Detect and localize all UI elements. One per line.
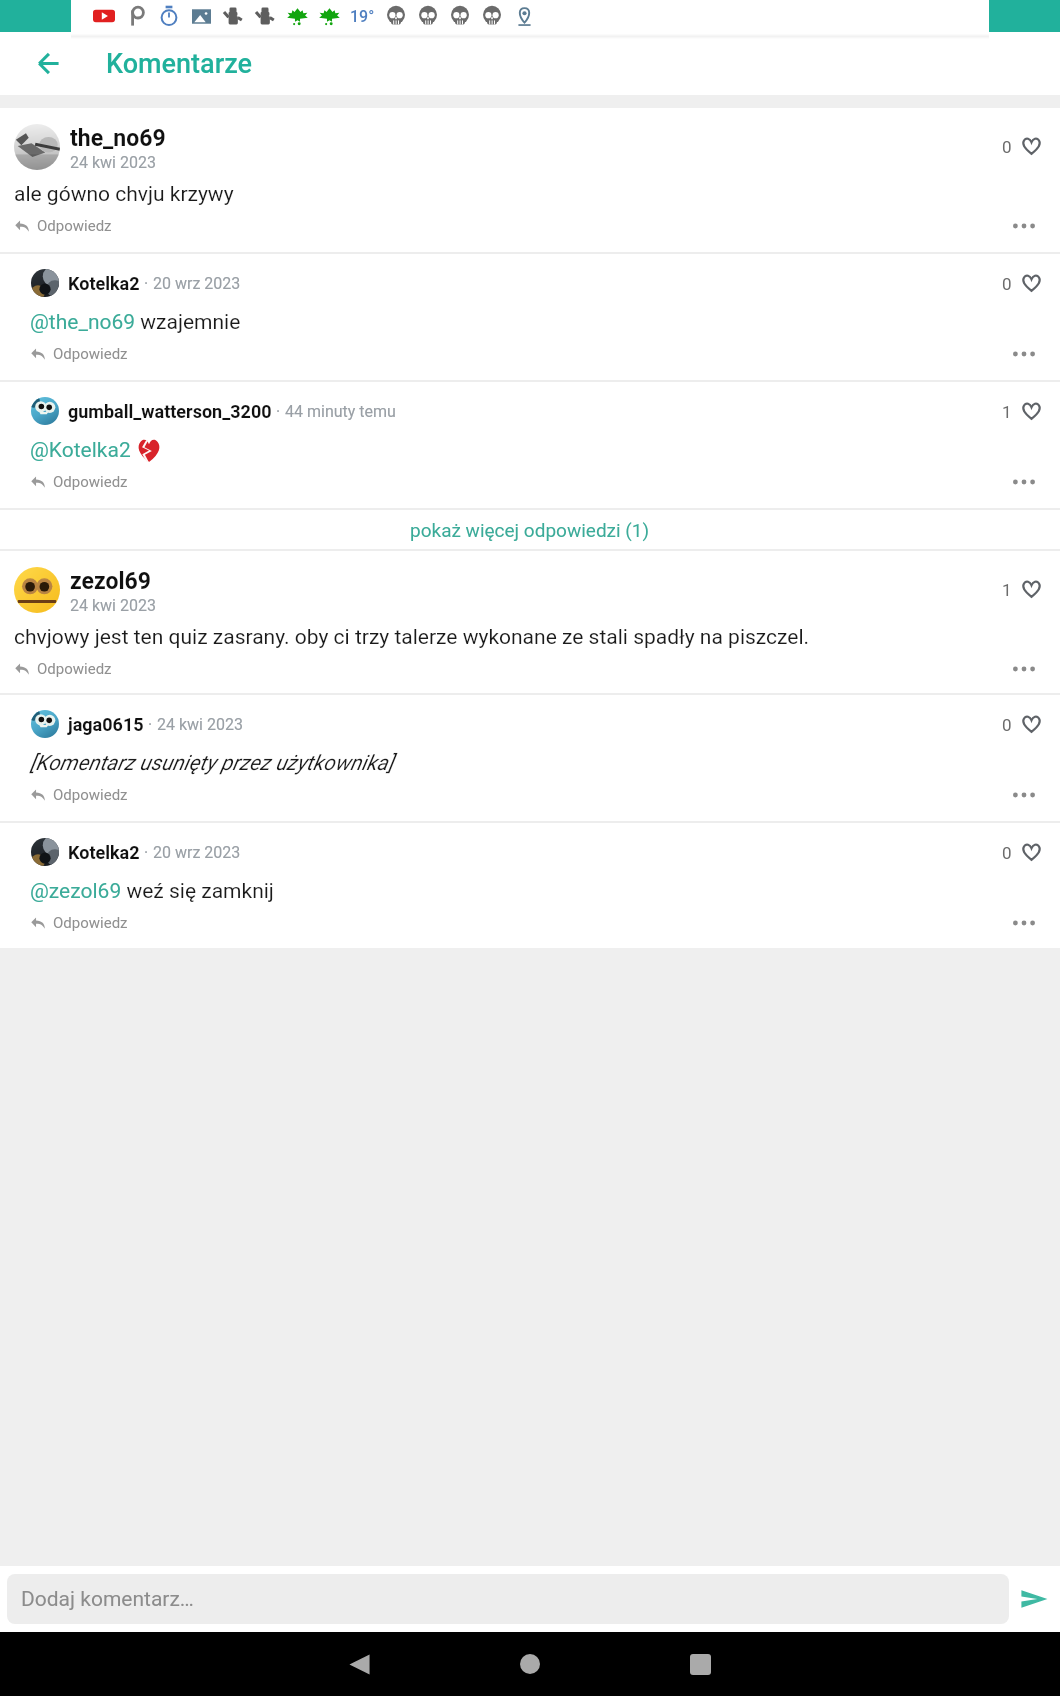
button[interactable]: Send [1009, 1571, 1060, 1627]
button[interactable]: Like [1021, 273, 1042, 294]
staticText: jaga0615 [68, 714, 144, 735]
staticText: 1 [1002, 402, 1012, 422]
staticText: [Komentarz usunięty przez użytkownika] [30, 751, 394, 776]
staticText: 0 [1002, 715, 1012, 735]
staticText: 20 wrz 2023 [153, 274, 241, 293]
staticText: Kotelka2 [68, 842, 140, 863]
button[interactable]: More options [1009, 654, 1039, 684]
staticText: pokaż więcej odpowiedzi (1) [410, 519, 650, 541]
staticText: @Kotelka2 [30, 438, 131, 463]
staticText: Odpowiedz [53, 473, 128, 491]
staticText: 24 kwi 2023 [70, 596, 156, 615]
staticText: Komentarze [106, 48, 253, 80]
button[interactable]: zezol69 [0, 551, 1060, 693]
staticText: 0 [1002, 274, 1012, 294]
button[interactable]: gumball_watterson_3200 [0, 382, 1060, 508]
staticText: Odpowiedz [37, 217, 112, 235]
staticText: zezol69 [70, 568, 151, 595]
button[interactable]: the_no69 [0, 108, 1060, 252]
button[interactable]: Odpowiedz [31, 343, 128, 365]
button[interactable]: More options [1009, 908, 1039, 938]
button[interactable]: Recents [668, 1632, 732, 1696]
staticText: 0 [1002, 843, 1012, 863]
button[interactable]: Back [327, 1632, 391, 1696]
button[interactable]: Like [1021, 579, 1042, 600]
staticText: Kotelka2 [68, 273, 140, 294]
staticText: 1 [1002, 580, 1012, 600]
button[interactable]: Odpowiedz [15, 215, 112, 237]
button[interactable]: Like [1021, 401, 1042, 422]
staticText: · [140, 274, 153, 293]
button[interactable]: Back [0, 32, 96, 95]
button[interactable]: Like [1021, 842, 1042, 863]
staticText: 19° [350, 7, 375, 26]
staticText: Odpowiedz [53, 345, 128, 363]
button[interactable]: Odpowiedz [31, 784, 128, 806]
staticText: 24 kwi 2023 [157, 715, 243, 734]
button[interactable]: Odpowiedz [31, 471, 128, 493]
staticText: · [144, 715, 157, 734]
staticText: ale gówno chvju krzywy [14, 182, 234, 207]
button[interactable]: Like [1021, 714, 1042, 735]
button[interactable]: More options [1009, 211, 1039, 241]
button[interactable]: jaga0615 [0, 695, 1060, 821]
staticText: 0 [1002, 137, 1012, 157]
button[interactable]: Odpowiedz [31, 912, 128, 934]
button[interactable]: Like [1021, 136, 1042, 157]
button[interactable]: More options [1009, 339, 1039, 369]
staticText: · [272, 402, 285, 421]
button[interactable]: Home [498, 1632, 562, 1696]
button[interactable]: Kotelka2 [0, 823, 1060, 948]
staticText: 20 wrz 2023 [153, 843, 241, 862]
staticText: @zezol69 weź się zamknij [30, 879, 274, 904]
button[interactable]: More options [1009, 467, 1039, 497]
staticText: Odpowiedz [53, 914, 128, 932]
button[interactable]: Odpowiedz [15, 658, 112, 680]
staticText: Odpowiedz [37, 660, 112, 678]
staticText: 44 minuty temu [285, 402, 396, 421]
button[interactable]: Dodaj komentarz… [7, 1574, 1009, 1624]
staticText: 24 kwi 2023 [70, 153, 156, 172]
button[interactable]: More options [1009, 780, 1039, 810]
button[interactable]: Kotelka2 [0, 254, 1060, 380]
staticText: @the_no69 wzajemnie [30, 310, 241, 335]
staticText: gumball_watterson_3200 [68, 401, 272, 422]
staticText: Odpowiedz [53, 786, 128, 804]
staticText: Dodaj komentarz… [21, 1587, 194, 1612]
staticText: the_no69 [70, 125, 166, 152]
staticText: chvjowy jest ten quiz zasrany. oby ci tr… [14, 625, 810, 650]
button[interactable]: pokaż więcej odpowiedzi (1) [0, 510, 1060, 549]
staticText: · [140, 843, 153, 862]
